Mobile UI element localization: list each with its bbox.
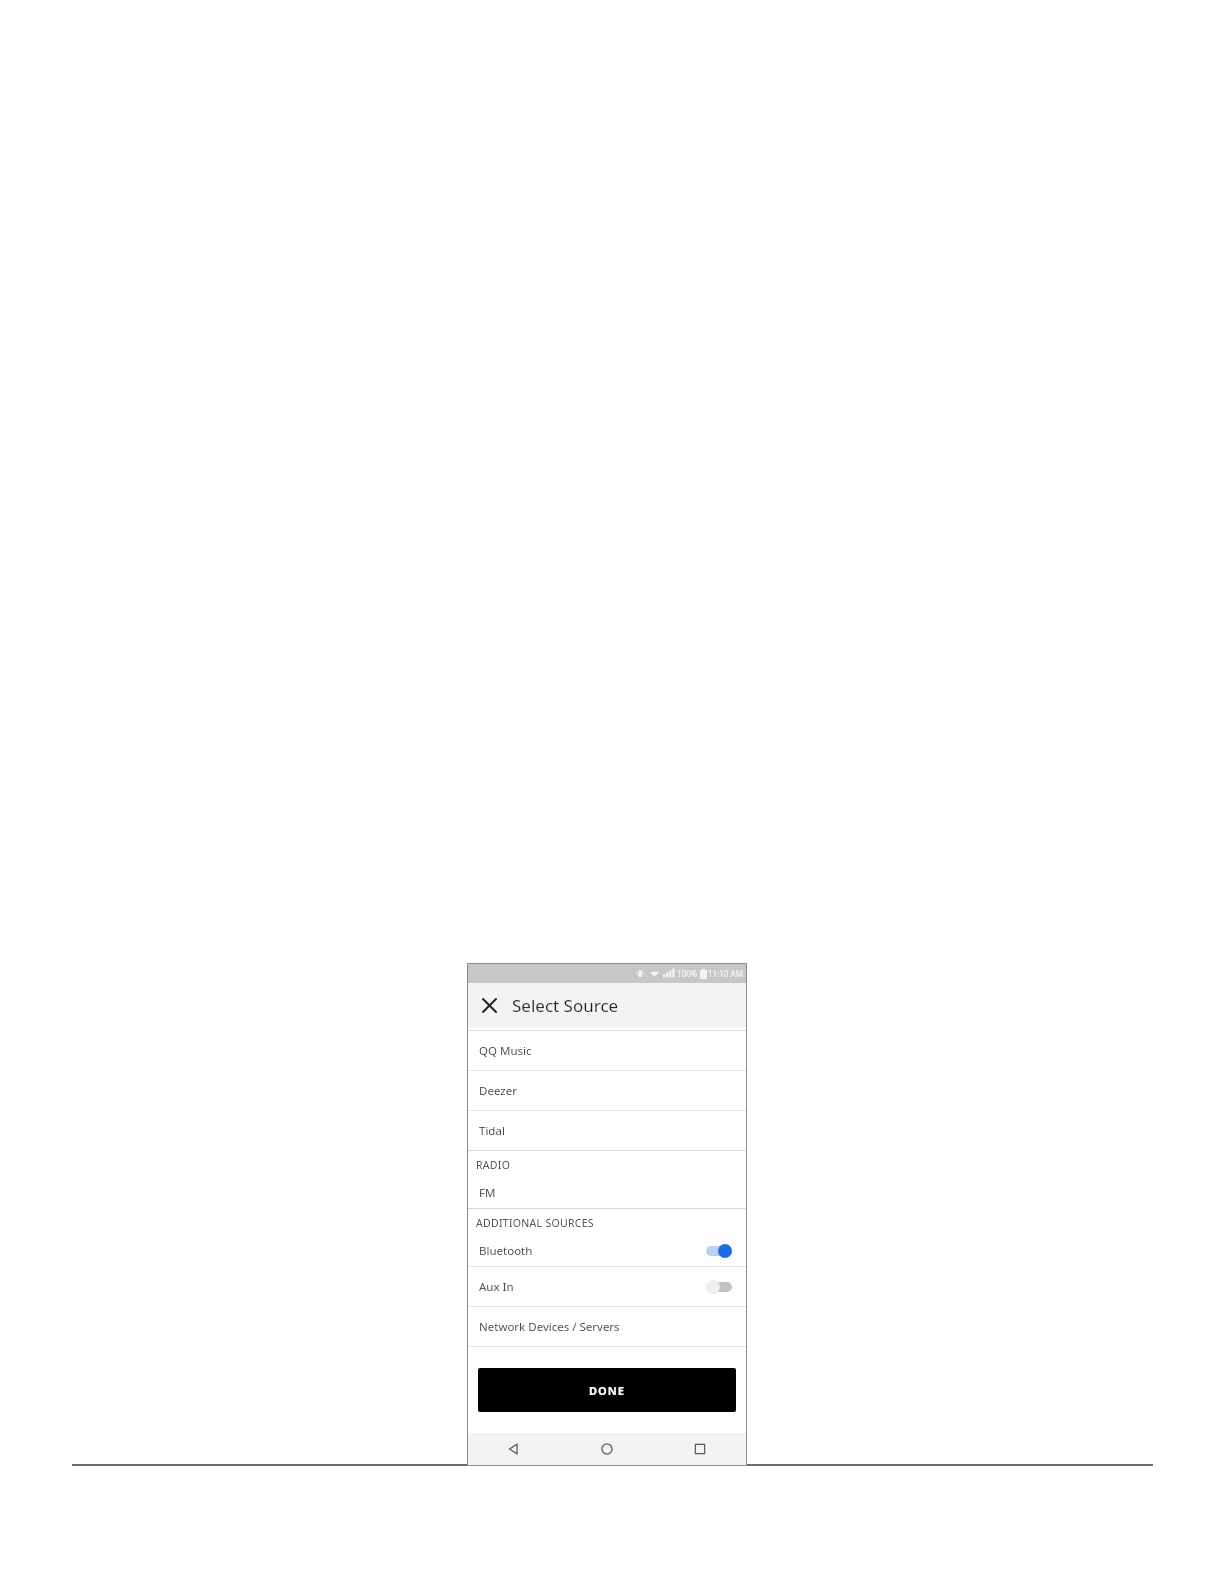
staticText: Network Devices / Servers bbox=[479, 1319, 620, 1335]
button[interactable]: Recents bbox=[653, 1433, 746, 1465]
staticText: Aux In bbox=[479, 1279, 514, 1295]
staticText: Deezer bbox=[479, 1083, 517, 1099]
button[interactable]: Bluetooth bbox=[468, 1236, 746, 1266]
staticText: ADDITIONAL SOURCES bbox=[476, 1216, 594, 1230]
staticText: FM bbox=[479, 1185, 496, 1201]
staticText: QQ Music bbox=[479, 1043, 532, 1059]
button[interactable]: Tidal bbox=[468, 1111, 746, 1150]
staticText: 100% bbox=[677, 968, 698, 979]
staticText: RADIO bbox=[476, 1158, 511, 1172]
staticText: DONE bbox=[589, 1383, 625, 1398]
staticText: 11:10 AM bbox=[708, 968, 743, 979]
staticText: Select Source bbox=[512, 994, 619, 1017]
button[interactable]: Home bbox=[560, 1433, 653, 1465]
button[interactable]: Network Devices / Servers bbox=[468, 1307, 746, 1346]
staticText: Tidal bbox=[479, 1123, 505, 1139]
button[interactable]: DONE bbox=[478, 1368, 736, 1412]
button[interactable]: FM bbox=[468, 1178, 746, 1208]
button[interactable]: Deezer bbox=[468, 1071, 746, 1110]
button[interactable]: Aux In bbox=[468, 1267, 746, 1306]
button[interactable]: Close bbox=[474, 990, 504, 1020]
button[interactable]: QQ Music bbox=[468, 1031, 746, 1070]
button[interactable]: Back bbox=[468, 1433, 560, 1465]
staticText: Bluetooth bbox=[479, 1243, 533, 1259]
